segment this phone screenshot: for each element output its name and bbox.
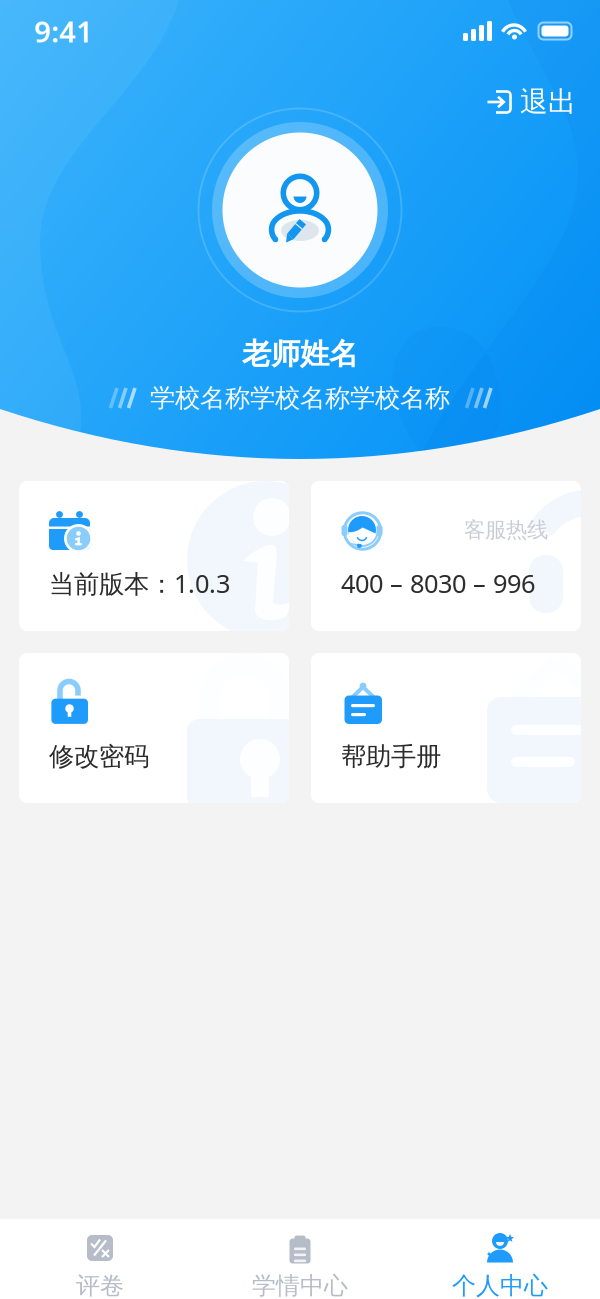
staticText: 帮助手册 — [341, 741, 441, 772]
button[interactable]: 客服热线 — [311, 481, 581, 631]
staticText: 学情中心 — [252, 1271, 348, 1299]
staticText: 客服热线 — [464, 517, 548, 543]
staticText: 400 – 8030 – 996 — [341, 566, 535, 600]
button[interactable]: 当前版本：1.0.3 — [19, 481, 289, 631]
staticText: 学校名称学校名称学校名称 — [150, 382, 450, 413]
staticText: 老师姓名 — [242, 336, 358, 372]
staticText: 当前版本：1.0.3 — [49, 566, 230, 600]
button[interactable]: 修改密码 — [19, 653, 289, 803]
staticText: 评卷 — [76, 1271, 124, 1299]
button[interactable]: 个人中心 — [400, 1219, 600, 1299]
button[interactable]: 评卷 — [0, 1219, 200, 1299]
button[interactable]: 退出 — [478, 79, 584, 125]
button[interactable]: 帮助手册 — [311, 653, 581, 803]
staticText: 退出 — [520, 85, 576, 119]
staticText: 个人中心 — [452, 1271, 548, 1299]
staticText: 9:41 — [34, 11, 93, 50]
staticText: 修改密码 — [49, 741, 149, 772]
button[interactable]: 学情中心 — [200, 1219, 400, 1299]
